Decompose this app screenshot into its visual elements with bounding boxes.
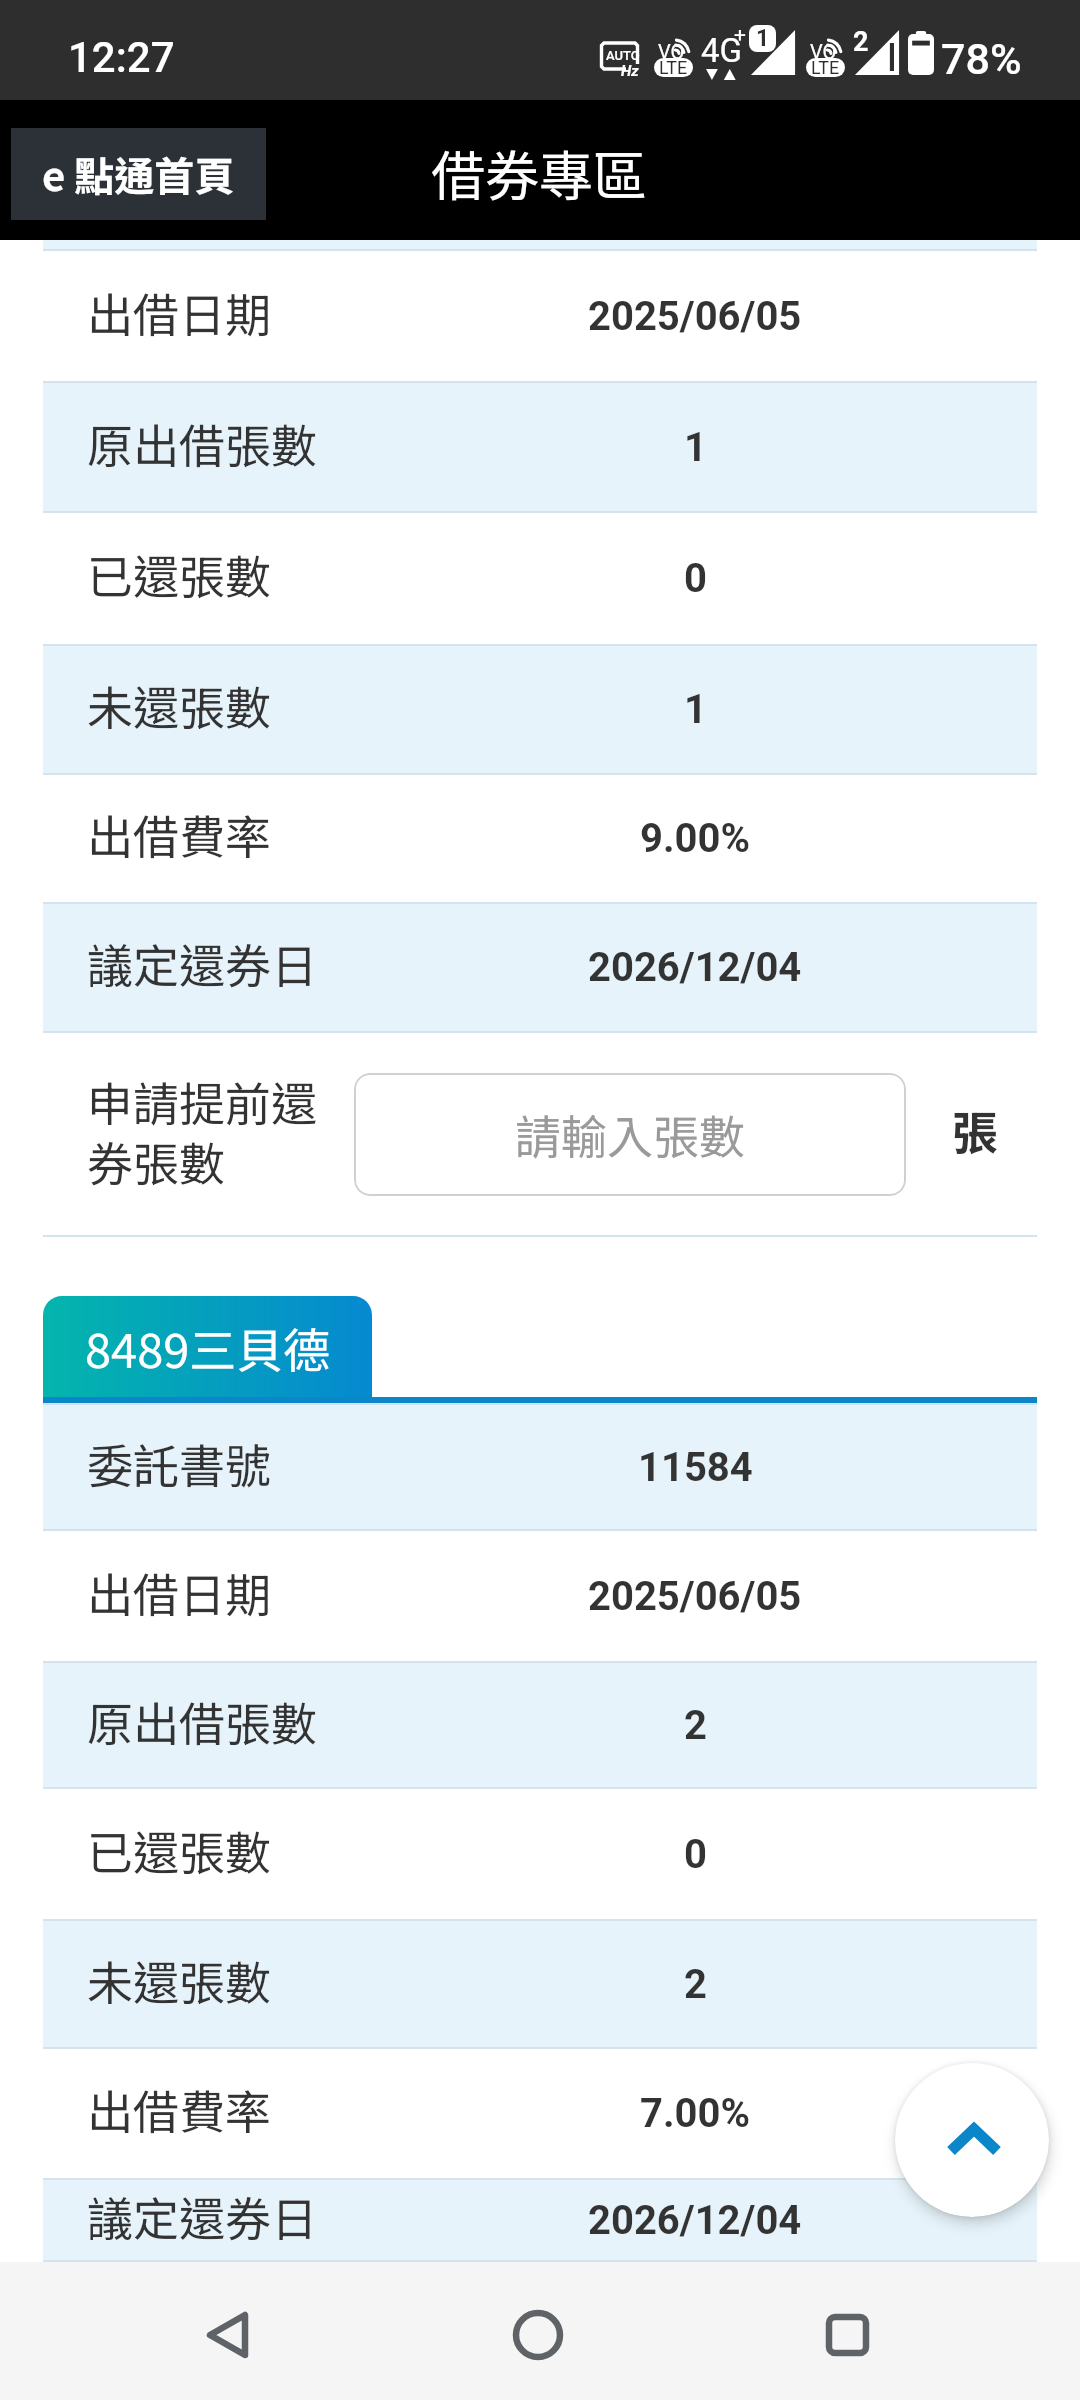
- staticText: AUTO: [606, 48, 640, 63]
- staticText: 請輸入張數: [515, 1101, 745, 1168]
- button[interactable]: 已還張數: [43, 1789, 1037, 1919]
- staticText: 已還張數: [87, 541, 271, 608]
- button[interactable]: 8489三貝德: [43, 1296, 372, 1397]
- staticText: LTE: [659, 58, 688, 76]
- staticText: 11584: [638, 1444, 753, 1491]
- staticText: 1: [684, 686, 707, 733]
- staticText: 12:27: [68, 33, 175, 82]
- staticText: 2025/06/05: [588, 293, 802, 340]
- staticText: 78%: [941, 34, 1022, 84]
- staticText: Hz: [621, 62, 639, 80]
- staticText: VO: [810, 40, 837, 63]
- button[interactable]: Home: [468, 2287, 608, 2383]
- staticText: 委託書號: [87, 1430, 271, 1497]
- staticText: 出借日期: [87, 1559, 271, 1626]
- button[interactable]: Scroll to top: [895, 2063, 1049, 2217]
- staticText: 借券專區: [431, 133, 647, 211]
- button[interactable]: Back: [157, 2287, 297, 2383]
- button[interactable]: Recent apps: [777, 2287, 917, 2383]
- staticText: VO: [658, 40, 685, 63]
- staticText: 出借費率: [87, 801, 271, 868]
- staticText: 議定還券日: [87, 930, 317, 997]
- button[interactable]: e 點通首頁: [11, 128, 266, 220]
- staticText: 原出借張數: [87, 410, 317, 477]
- staticText: 申請提前還: [87, 1068, 317, 1135]
- staticText: 未還張數: [87, 1947, 271, 2014]
- staticText: 出借日期: [87, 279, 271, 346]
- staticText: 張: [952, 1097, 998, 1164]
- staticText: 7.00%: [640, 2090, 751, 2137]
- staticText: 原出借張數: [87, 1688, 317, 1755]
- button[interactable]: 出借費率: [43, 775, 1037, 902]
- staticText: 0: [684, 555, 707, 602]
- button[interactable]: 議定還券日: [43, 2178, 1037, 2262]
- staticText: 0: [684, 1831, 707, 1878]
- staticText: 2: [684, 1961, 707, 2008]
- staticText: 券張數: [87, 1128, 225, 1195]
- staticText: 1: [684, 424, 707, 471]
- button[interactable]: 原出借張數: [43, 381, 1037, 513]
- staticText: 2: [853, 26, 869, 58]
- staticText: 2025/06/05: [588, 1573, 802, 1620]
- button[interactable]: 已還張數: [43, 513, 1037, 644]
- staticText: 議定還券日: [87, 2183, 317, 2250]
- button[interactable]: 議定還券日: [43, 902, 1037, 1033]
- staticText: LTE: [811, 58, 840, 76]
- button[interactable]: 原出借張數: [43, 1661, 1037, 1789]
- button[interactable]: 出借費率: [43, 2049, 1037, 2178]
- button[interactable]: 未還張數: [43, 644, 1037, 775]
- staticText: 未還張數: [87, 672, 271, 739]
- staticText: 2026/12/04: [588, 2197, 802, 2244]
- staticText: 2026/12/04: [588, 944, 802, 991]
- staticText: 9.00%: [640, 815, 751, 862]
- staticText: 4G: [701, 31, 743, 70]
- staticText: 1: [756, 25, 770, 52]
- staticText: 出借費率: [87, 2076, 271, 2143]
- button[interactable]: 委託書號: [43, 1403, 1037, 1531]
- staticText: 已還張數: [87, 1817, 271, 1884]
- staticText: +: [734, 23, 746, 48]
- button[interactable]: 出借日期: [43, 251, 1037, 381]
- staticText: 8489三貝德: [85, 1313, 331, 1381]
- staticText: e 點通首頁: [42, 145, 235, 203]
- button[interactable]: 未還張數: [43, 1919, 1037, 2049]
- staticText: 2: [684, 1702, 707, 1749]
- button[interactable]: 請輸入張數: [354, 1073, 906, 1196]
- button[interactable]: 出借日期: [43, 1531, 1037, 1661]
